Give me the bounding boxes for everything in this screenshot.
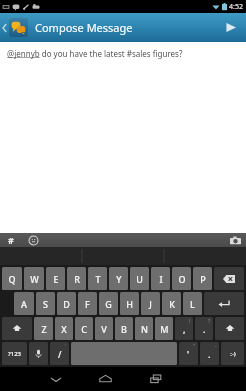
staticText: :-)	[230, 350, 236, 358]
staticText: #	[8, 234, 14, 246]
staticText: -	[215, 343, 217, 350]
staticText: /	[58, 348, 62, 360]
staticText: R	[74, 273, 80, 285]
staticText: V	[101, 323, 107, 335]
button[interactable]: ?123	[2, 342, 27, 365]
staticText: B	[121, 323, 127, 335]
staticText: ?123	[8, 350, 21, 358]
staticText: C	[81, 323, 87, 335]
button[interactable]: U	[130, 267, 149, 290]
button[interactable]: J	[141, 292, 160, 315]
button[interactable]: N	[135, 317, 153, 340]
staticText: W	[30, 273, 39, 285]
button[interactable]: G	[99, 292, 118, 315]
button[interactable]: Z	[34, 317, 53, 340]
button[interactable]: :-)	[221, 342, 244, 365]
staticText: D	[63, 298, 70, 310]
button[interactable]: E	[46, 267, 65, 290]
staticText: '	[187, 348, 190, 360]
staticText: L	[190, 298, 195, 310]
staticText: E	[53, 273, 59, 285]
staticText: T	[95, 273, 101, 285]
button[interactable]: Shift	[2, 317, 32, 340]
button[interactable]: T	[88, 267, 107, 290]
button[interactable]: R	[67, 267, 86, 290]
button[interactable]: Hide keyboard	[40, 367, 71, 391]
staticText: @jennyb do you have the latest #sales fi…	[7, 48, 183, 59]
button[interactable]: Backspace	[214, 267, 244, 290]
staticText: "	[193, 343, 196, 350]
button[interactable]: H	[120, 292, 139, 315]
button[interactable]: Send	[216, 13, 246, 42]
button[interactable]: Y	[109, 267, 128, 290]
button[interactable]: L	[183, 292, 202, 315]
button[interactable]: #	[0, 233, 22, 247]
staticText: S	[43, 298, 48, 310]
button[interactable]: I	[151, 267, 170, 290]
button[interactable]: Voice input	[29, 342, 48, 365]
staticText: J	[149, 298, 152, 310]
button[interactable]: Camera	[224, 233, 246, 247]
button[interactable]: App icon	[9, 18, 28, 37]
button[interactable]: Recent apps	[140, 367, 171, 391]
staticText: O	[178, 273, 186, 285]
staticText: ,	[183, 323, 186, 335]
button[interactable]: O	[172, 267, 191, 290]
staticText: H	[126, 298, 133, 310]
button[interactable]: -	[200, 342, 219, 365]
button[interactable]: V	[95, 317, 113, 340]
staticText: '	[65, 343, 67, 350]
button[interactable]: M	[155, 317, 173, 340]
staticText: U	[136, 273, 143, 285]
button[interactable]: ?	[195, 317, 213, 340]
staticText: ?	[208, 318, 211, 325]
staticText: Compose Message	[35, 20, 133, 35]
button[interactable]: D	[57, 292, 76, 315]
staticText: !	[189, 318, 191, 325]
button[interactable]: Emoji	[22, 233, 44, 247]
button[interactable]: Home	[90, 367, 121, 391]
button[interactable]: "	[179, 342, 198, 365]
staticText: .	[203, 323, 206, 335]
staticText: G	[105, 298, 112, 310]
button[interactable]: F	[78, 292, 97, 315]
staticText: Z	[41, 323, 47, 335]
staticText: Y	[116, 273, 122, 285]
staticText: A	[21, 298, 27, 310]
button[interactable]: Q	[2, 267, 22, 290]
staticText: I	[159, 273, 163, 285]
button[interactable]: Up	[0, 13, 30, 42]
button[interactable]: W	[24, 267, 44, 290]
staticText: N	[141, 323, 148, 335]
button[interactable]: X	[55, 317, 73, 340]
button[interactable]: K	[162, 292, 181, 315]
staticText: F	[85, 298, 90, 310]
button[interactable]: Enter	[204, 292, 244, 315]
staticText: P	[200, 273, 206, 285]
button[interactable]: !	[175, 317, 193, 340]
button[interactable]: C	[75, 317, 93, 340]
staticText: K	[169, 298, 175, 310]
staticText: Q	[8, 273, 16, 285]
staticText: 4:52	[229, 2, 243, 12]
staticText: .	[208, 348, 211, 360]
button[interactable]: S	[36, 292, 55, 315]
button[interactable]: A	[14, 292, 34, 315]
button[interactable]: P	[193, 267, 212, 290]
staticText: X	[61, 323, 67, 335]
button[interactable]: Shift	[215, 317, 244, 340]
button[interactable]: B	[115, 317, 133, 340]
button[interactable]: '	[50, 342, 69, 365]
staticText: M	[160, 323, 169, 335]
